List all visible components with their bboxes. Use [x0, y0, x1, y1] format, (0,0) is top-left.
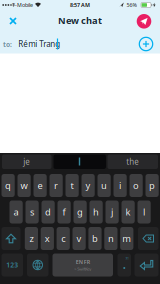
- button[interactable]: s: [25, 200, 39, 223]
- button[interactable]: n: [104, 227, 117, 250]
- staticText: y: [86, 179, 91, 192]
- staticText: m: [122, 232, 131, 245]
- staticText: k: [126, 206, 131, 218]
- staticText: f: [63, 206, 66, 218]
- button[interactable]: y: [81, 174, 95, 197]
- staticText: d: [45, 206, 51, 218]
- button[interactable]: q: [1, 174, 15, 197]
- button[interactable]: a: [9, 200, 23, 223]
- staticText: i: [119, 179, 121, 192]
- staticText: 123: [6, 261, 18, 269]
- staticText: EN FR: [76, 258, 90, 265]
- staticText: q: [5, 179, 11, 192]
- staticText: n: [108, 232, 114, 245]
- staticText: j: [111, 206, 113, 218]
- button[interactable]: ?!: [117, 253, 131, 276]
- button[interactable]: c: [57, 227, 70, 250]
- button[interactable]: je: [2, 154, 51, 169]
- staticText: New chat: [58, 14, 102, 27]
- button[interactable]: f: [57, 200, 71, 223]
- button[interactable]: j: [105, 200, 119, 223]
- staticText: l: [143, 206, 145, 218]
- button[interactable]: h: [89, 200, 103, 223]
- staticText: e: [38, 179, 43, 192]
- button[interactable]: d: [41, 200, 55, 223]
- button[interactable]: [134, 253, 158, 276]
- button[interactable]: [137, 14, 151, 29]
- button[interactable]: EN FR: [52, 253, 113, 276]
- staticText: the: [126, 156, 139, 167]
- staticText: o: [133, 179, 139, 192]
- staticText: s: [30, 206, 34, 218]
- button[interactable]: [1, 227, 20, 250]
- staticText: w: [21, 179, 28, 192]
- button[interactable]: e: [33, 174, 47, 197]
- staticText: je: [23, 156, 30, 167]
- button[interactable]: l: [137, 200, 151, 223]
- button[interactable]: [53, 154, 106, 169]
- staticText: 8:57 AM: [70, 1, 90, 9]
- button[interactable]: w: [17, 174, 31, 197]
- button[interactable]: k: [121, 200, 135, 223]
- button[interactable]: [139, 37, 153, 51]
- button[interactable]: i: [113, 174, 127, 197]
- button[interactable]: r: [49, 174, 63, 197]
- staticText: z: [29, 232, 33, 245]
- button[interactable]: p: [145, 174, 159, 197]
- button[interactable]: 123: [1, 253, 23, 276]
- staticText: ?!: [125, 256, 128, 261]
- staticText: b: [92, 232, 98, 245]
- button[interactable]: [27, 253, 48, 276]
- staticText: v: [77, 232, 82, 245]
- staticText: > SwiftKey: [74, 266, 91, 272]
- staticText: g: [77, 206, 83, 218]
- staticText: h: [93, 206, 99, 218]
- staticText: t: [71, 179, 74, 192]
- staticText: Rémi Trang: [18, 39, 60, 49]
- staticText: a: [14, 206, 19, 218]
- button[interactable]: x: [41, 227, 54, 250]
- button[interactable]: the: [107, 154, 158, 169]
- staticText: x: [45, 232, 50, 245]
- staticText: c: [61, 232, 65, 245]
- button[interactable]: t: [65, 174, 79, 197]
- button[interactable]: [138, 227, 158, 250]
- button[interactable]: m: [120, 227, 133, 250]
- button[interactable]: b: [88, 227, 102, 250]
- staticText: p: [149, 179, 155, 192]
- button[interactable]: v: [72, 227, 86, 250]
- staticText: 56%: [126, 1, 136, 9]
- button[interactable]: o: [129, 174, 143, 197]
- staticText: T-Mobile: [12, 1, 33, 9]
- button[interactable]: z: [25, 227, 38, 250]
- staticText: r: [54, 179, 58, 192]
- staticText: to:: [3, 40, 12, 49]
- staticText: u: [101, 179, 107, 192]
- button[interactable]: g: [73, 200, 87, 223]
- button[interactable]: [9, 17, 17, 25]
- button[interactable]: u: [97, 174, 111, 197]
